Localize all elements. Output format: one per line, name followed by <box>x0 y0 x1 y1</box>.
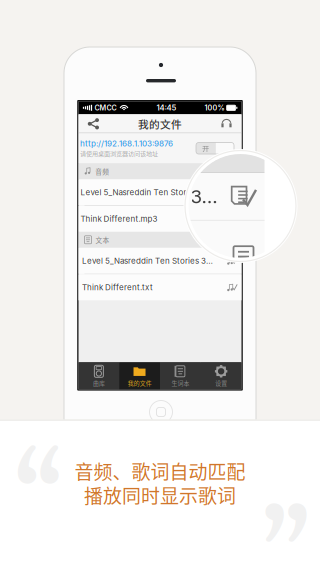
staticText: CMCC <box>94 103 116 112</box>
staticText: 开 <box>202 143 209 153</box>
button[interactable]: 我的文件 <box>119 362 160 389</box>
button[interactable]: Level 5_Nasreddin Ten Stor <box>78 179 241 205</box>
staticText: 设置 <box>215 379 227 387</box>
staticText: Level 5_Nasreddin Ten Stories 3… <box>82 256 213 266</box>
staticText: 3… <box>190 185 217 208</box>
staticText: Level 5_Nasreddin Ten Stor <box>80 187 186 197</box>
staticText: http://192.168.1.103:9876 <box>80 139 173 148</box>
staticText: 100% <box>204 103 224 112</box>
staticText: 曲库 <box>93 379 105 387</box>
staticText: 音频、歌词自动匹配 <box>74 457 245 485</box>
button[interactable]: Server on <box>196 143 234 154</box>
button[interactable]: Now Playing <box>211 114 241 133</box>
staticText: Think Different.mp3 <box>80 214 157 224</box>
button[interactable]: Think Different.txt <box>78 274 241 300</box>
staticText: ” <box>260 491 310 568</box>
button[interactable]: Share <box>78 114 108 133</box>
button[interactable]: 生词本 <box>160 362 201 389</box>
staticText: 生词本 <box>171 379 189 387</box>
button[interactable]: 曲库 <box>78 362 119 389</box>
button[interactable]: Think Different.mp3 <box>78 206 241 232</box>
button[interactable]: 设置 <box>201 362 242 389</box>
staticText: 播放同时显示歌词 <box>84 481 236 509</box>
staticText: 我的文件 <box>138 116 182 131</box>
staticText: 音频 <box>95 166 109 176</box>
button[interactable]: Level 5_Nasreddin Ten Stories 3… <box>78 248 241 274</box>
staticText: 文本 <box>95 235 109 245</box>
staticText: 请使用桌面浏览器访问该地址 <box>80 149 158 158</box>
staticText: 我的文件 <box>128 379 152 387</box>
staticText: 14:45 <box>156 103 176 112</box>
staticText: “ <box>13 433 63 568</box>
staticText: Think Different.txt <box>82 282 153 292</box>
